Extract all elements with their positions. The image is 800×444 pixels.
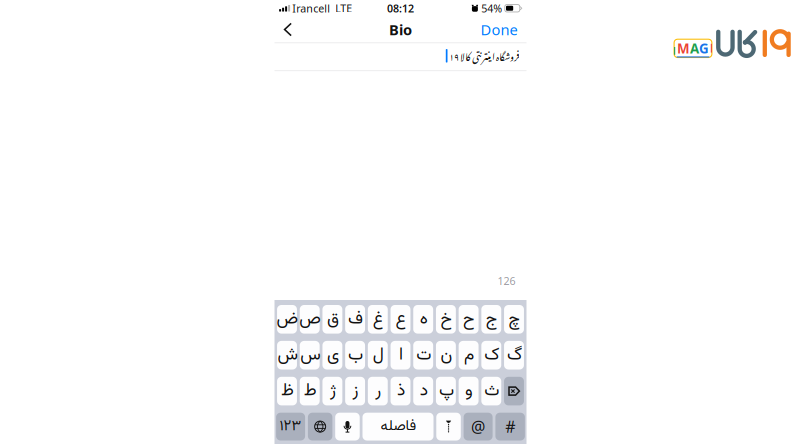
button[interactable]: ث <box>481 377 501 405</box>
button[interactable]: ح <box>459 305 478 334</box>
button[interactable]: ش <box>277 341 297 369</box>
button[interactable]: ل <box>368 341 388 369</box>
button[interactable]: ا <box>391 341 410 369</box>
button[interactable]: و <box>459 377 478 405</box>
button[interactable]: ز <box>345 377 365 405</box>
button[interactable]: س <box>300 341 320 369</box>
button[interactable]: ع <box>391 305 410 334</box>
button[interactable]: ض <box>277 305 297 334</box>
staticText: فروشگاه اینترنتی کالا ۱۹ <box>448 43 518 67</box>
staticText: ن <box>440 342 452 369</box>
staticText: ه <box>419 306 427 333</box>
button[interactable]: ک <box>481 341 501 369</box>
staticText: ف <box>348 306 363 333</box>
staticText: ث <box>484 378 499 405</box>
button[interactable]: ۱۲۳ <box>276 413 305 440</box>
staticText: ز <box>352 378 358 405</box>
button[interactable]: غ <box>368 305 388 334</box>
button[interactable]: Next keyboard <box>308 413 332 440</box>
button[interactable]: Done <box>480 16 526 42</box>
button[interactable]: ظ <box>277 377 297 405</box>
staticText: ل <box>372 342 383 369</box>
button[interactable]: ط <box>300 377 320 405</box>
button[interactable]: Dictation <box>335 413 360 440</box>
button[interactable]: Back <box>274 16 309 42</box>
staticText: و <box>465 378 473 405</box>
staticText: ط <box>303 378 316 405</box>
staticText: ا <box>398 342 402 369</box>
staticText: G <box>699 39 709 57</box>
button[interactable]: ه <box>413 305 433 334</box>
staticText: د <box>419 378 427 405</box>
staticText: غ <box>372 306 383 333</box>
staticText: ع <box>395 306 406 333</box>
button[interactable]: خ <box>436 305 456 334</box>
button[interactable]: @ <box>464 413 493 440</box>
button[interactable]: ر <box>368 377 388 405</box>
button[interactable]: ق <box>322 305 342 334</box>
staticText: # <box>505 416 515 437</box>
button[interactable]: م <box>459 341 478 369</box>
staticText: ق <box>326 306 338 333</box>
staticText: ر <box>375 378 381 405</box>
button[interactable]: گ <box>504 341 524 369</box>
staticText: ب <box>348 342 363 369</box>
staticText: ص <box>299 306 321 333</box>
staticText: Irancell <box>292 1 330 15</box>
staticText: خ <box>440 306 452 333</box>
staticText: ظ <box>280 378 293 405</box>
button[interactable]: ص <box>300 305 320 334</box>
button[interactable]: ب <box>345 341 365 369</box>
button[interactable]: ذ <box>391 377 410 405</box>
staticText: ح <box>463 306 475 333</box>
button[interactable]: Delete <box>504 377 524 405</box>
button[interactable]: د <box>413 377 433 405</box>
staticText: ۱۲۳ <box>280 415 302 438</box>
button[interactable]: ن <box>436 341 456 369</box>
staticText: M <box>677 39 690 57</box>
staticText: ی <box>326 342 338 369</box>
staticText: @ <box>471 416 485 437</box>
staticText: ک <box>484 342 499 369</box>
staticText: ت <box>416 342 431 369</box>
staticText: ذ <box>396 378 404 405</box>
staticText: ژ <box>329 378 335 405</box>
staticText: س <box>300 342 320 369</box>
button[interactable]: ژ <box>322 377 342 405</box>
button[interactable]: ی <box>322 341 342 369</box>
button[interactable]: # <box>495 413 525 440</box>
staticText: A <box>690 39 699 57</box>
staticText: پ <box>438 378 453 405</box>
staticText: فاصله <box>380 415 416 438</box>
staticText: 08:12 <box>387 1 414 15</box>
staticText: گ <box>506 342 521 369</box>
staticText: Bio <box>389 20 412 39</box>
staticText: 54% <box>481 1 502 15</box>
staticText: ض <box>276 306 298 333</box>
staticText: م <box>464 342 474 369</box>
button[interactable]: فاصله <box>362 413 433 440</box>
button[interactable]: ف <box>345 305 365 334</box>
button[interactable]: Punctuation <box>436 413 461 440</box>
button[interactable]: ت <box>413 341 433 369</box>
staticText: ج <box>485 306 497 333</box>
staticText: Done <box>480 20 517 39</box>
staticText: LTE <box>335 1 352 15</box>
staticText: ش <box>277 342 297 369</box>
staticText: چ <box>508 306 520 333</box>
button[interactable]: چ <box>504 305 524 334</box>
button[interactable]: فروشگاه اینترنتی کالا ۱۹ <box>274 43 526 70</box>
staticText: 126 <box>497 274 515 288</box>
button[interactable]: ج <box>481 305 501 334</box>
button[interactable]: پ <box>436 377 456 405</box>
